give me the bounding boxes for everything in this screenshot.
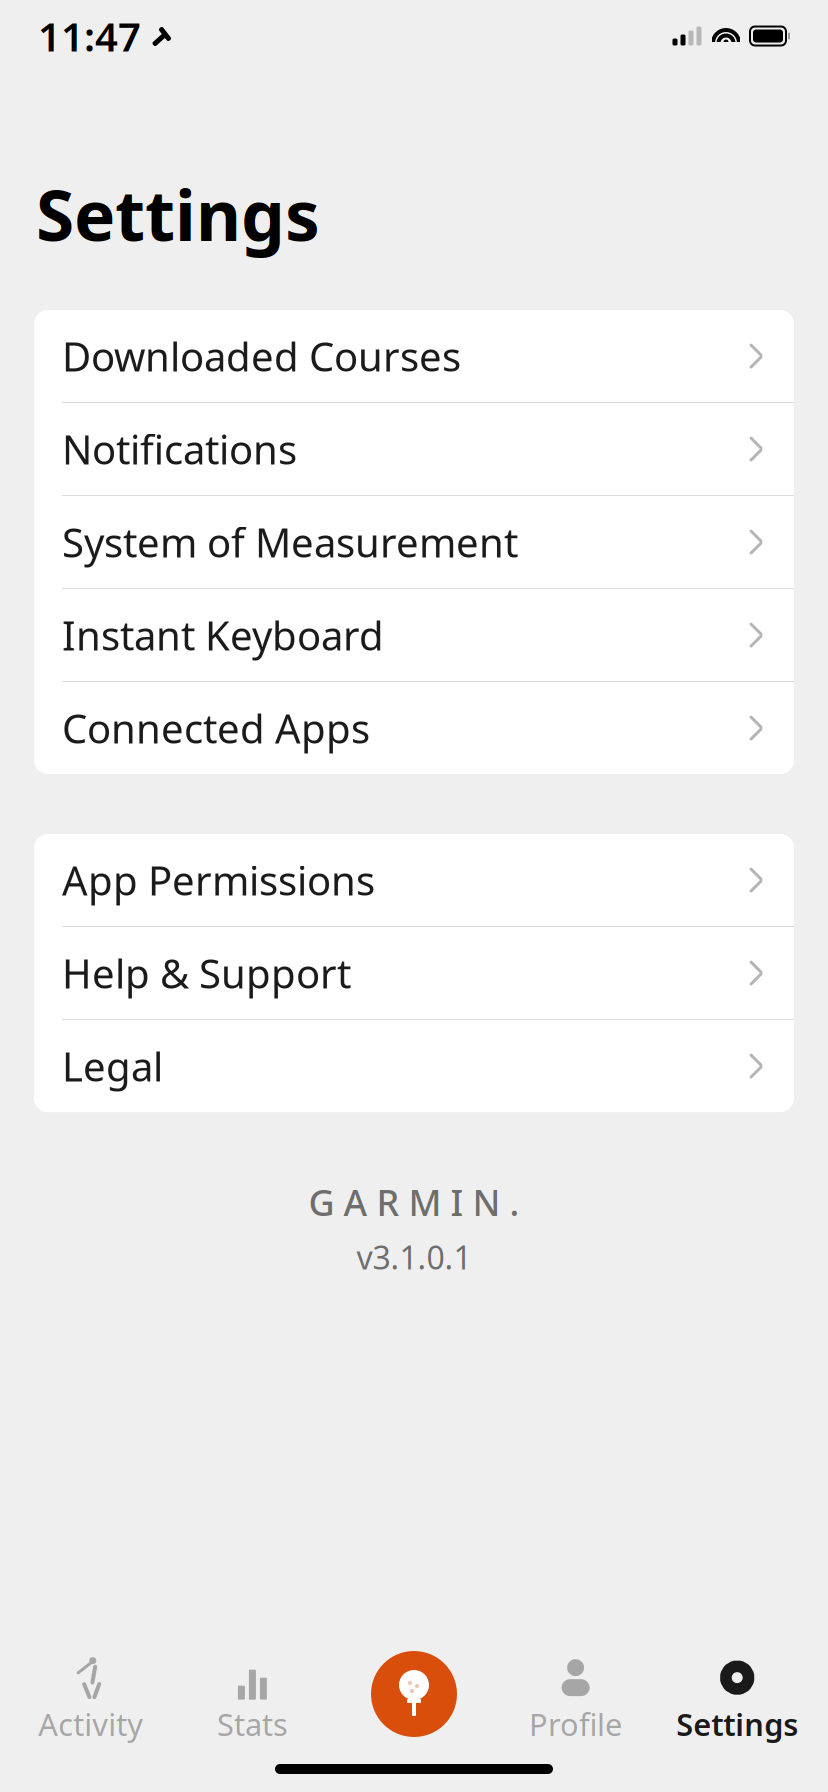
button[interactable]: Profile: [495, 1650, 656, 1750]
staticText: Stats: [217, 1704, 288, 1744]
button[interactable]: System of Measurement: [34, 496, 794, 589]
button[interactable]: Stats: [172, 1650, 333, 1750]
button[interactable]: Instant Keyboard: [34, 589, 794, 682]
button[interactable]: Legal: [34, 1020, 794, 1112]
staticText: Activity: [38, 1704, 143, 1744]
staticText: 11:47: [38, 9, 141, 62]
staticText: App Permissions: [62, 853, 375, 907]
staticText: Legal: [62, 1039, 163, 1093]
staticText: System of Measurement: [62, 515, 518, 569]
staticText: v3.1.0.1: [356, 1236, 471, 1278]
button[interactable]: Settings: [656, 1650, 818, 1750]
button[interactable]: Activity: [10, 1650, 172, 1750]
staticText: Notifications: [62, 422, 297, 476]
button[interactable]: Help & Support: [34, 927, 794, 1020]
staticText: Settings: [676, 1704, 798, 1744]
button[interactable]: App Permissions: [34, 834, 794, 927]
button[interactable]: Connected Apps: [34, 682, 794, 774]
staticText: Instant Keyboard: [62, 608, 384, 662]
staticText: Help & Support: [62, 946, 351, 1000]
staticText: G A R M I N .: [308, 1178, 519, 1226]
button[interactable]: Start round: [371, 1651, 457, 1737]
staticText: Connected Apps: [62, 701, 370, 755]
button[interactable]: Notifications: [34, 403, 794, 496]
staticText: Settings: [36, 168, 320, 260]
staticText: Downloaded Courses: [62, 329, 461, 383]
button[interactable]: Downloaded Courses: [34, 310, 794, 403]
staticText: Profile: [529, 1704, 622, 1744]
